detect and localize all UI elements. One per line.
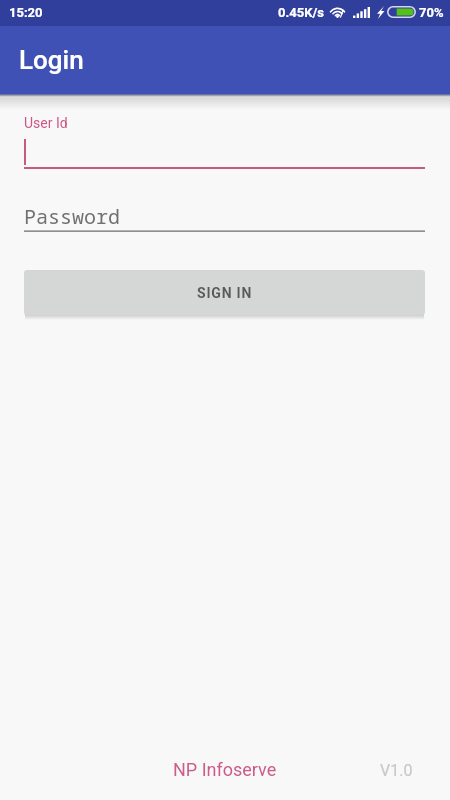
staticText: Login [19,45,84,75]
other: Battery [387,6,416,18]
staticText: V1.0 [380,761,413,780]
button[interactable]: SIGN IN [24,270,425,315]
staticText: Password [24,203,120,230]
other: Charging [377,6,385,20]
staticText: SIGN IN [197,285,253,301]
staticText: User Id [24,115,68,131]
button[interactable]: User Id input field [24,112,425,169]
button[interactable]: Password input field [24,200,425,233]
staticText: NP Infoserve [173,759,277,780]
other: Wifi [329,5,347,19]
other: Signal [353,7,371,19]
staticText: 15:20 [9,5,43,20]
staticText: 0.45K/s [278,5,324,20]
staticText: 70% [419,5,444,20]
